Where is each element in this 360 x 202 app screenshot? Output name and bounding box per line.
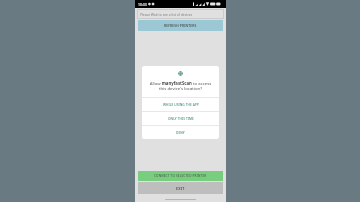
button[interactable]: REFRESH PRINTERS bbox=[138, 20, 223, 31]
staticText: Please Wait to see a list of devices bbox=[140, 12, 193, 16]
button[interactable]: WHILE USING THE APP bbox=[142, 98, 219, 111]
staticText: ONLY THIS TIME bbox=[168, 117, 194, 121]
button[interactable]: EXIT bbox=[138, 182, 223, 194]
staticText: DENY bbox=[176, 131, 185, 135]
staticText: CONNECT TO SELECTED PRINTER bbox=[154, 174, 207, 178]
button[interactable]: CONNECT TO SELECTED PRINTER bbox=[138, 171, 223, 181]
staticText: WHILE USING THE APP bbox=[163, 103, 199, 107]
staticText: REFRESH PRINTERS bbox=[164, 24, 197, 28]
staticText: 10:33 bbox=[138, 2, 147, 7]
button[interactable]: DENY bbox=[142, 126, 219, 139]
button[interactable]: ONLY THIS TIME bbox=[142, 112, 219, 125]
other: Location bbox=[178, 71, 183, 76]
staticText: Allow manyfastScan to access this device… bbox=[149, 80, 212, 91]
staticText: EXIT bbox=[176, 186, 185, 191]
